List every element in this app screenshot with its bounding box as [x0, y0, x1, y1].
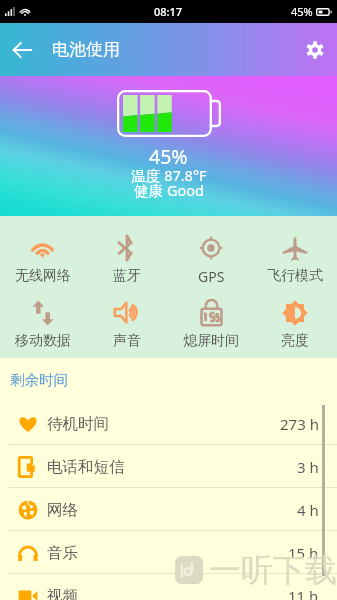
staticText: 3 h [297, 457, 319, 477]
button[interactable]: 无线网络 [0, 228, 85, 293]
staticText: 待机时间 [47, 414, 109, 434]
staticText: 45% [291, 4, 313, 19]
staticText: 电池使用 [52, 39, 120, 60]
staticText: 11 h [288, 586, 319, 600]
button[interactable]: 移动数据 [0, 293, 85, 358]
staticText: 无线网络 [15, 267, 71, 285]
staticText: 45% [149, 143, 188, 170]
staticText: 音乐 [47, 543, 78, 563]
staticText: 剩余时间 [10, 371, 68, 389]
button[interactable]: 飞行模式 [253, 228, 337, 293]
staticText: 视频 [47, 586, 78, 600]
button[interactable]: 视频 [0, 574, 337, 600]
staticText: 15 h [288, 543, 319, 563]
button[interactable]: Back [0, 23, 44, 76]
button[interactable]: 熄屏时间 [169, 293, 253, 358]
staticText: 声音 [113, 332, 141, 350]
button[interactable]: 亮度 [253, 293, 337, 358]
staticText: GPS [198, 267, 225, 286]
staticText: 08:17 [154, 4, 183, 19]
staticText: 4 h [297, 500, 319, 520]
button[interactable]: GPS [169, 228, 253, 293]
staticText: 飞行模式 [267, 267, 323, 285]
staticText: 273 h [280, 414, 319, 434]
button[interactable]: 待机时间 [0, 402, 337, 445]
staticText: 亮度 [281, 332, 309, 350]
button[interactable]: 蓝牙 [85, 228, 169, 293]
button[interactable]: 声音 [85, 293, 169, 358]
button[interactable]: 电话和短信 [0, 445, 337, 488]
button[interactable]: 音乐 [0, 531, 337, 574]
staticText: 网络 [47, 500, 78, 520]
staticText: 移动数据 [15, 332, 71, 350]
staticText: 电话和短信 [47, 457, 125, 477]
staticText: 蓝牙 [113, 267, 141, 285]
button[interactable]: 网络 [0, 488, 337, 531]
button[interactable]: Settings [293, 23, 337, 76]
staticText: 一听下载 [209, 550, 337, 590]
staticText: 熄屏时间 [183, 332, 239, 350]
staticText: 温度 87.8°F 健康 Good [131, 165, 207, 200]
